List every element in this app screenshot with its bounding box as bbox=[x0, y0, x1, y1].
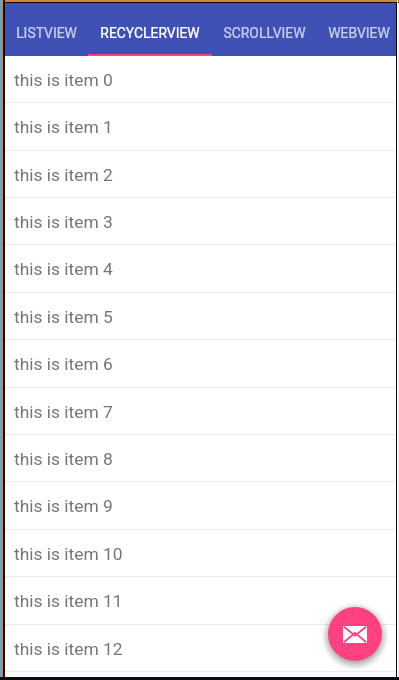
staticText: this is item 2 bbox=[14, 165, 113, 185]
staticText: this is item 6 bbox=[14, 354, 113, 374]
button[interactable]: this is item 10 bbox=[5, 530, 396, 577]
staticText: this is item 7 bbox=[14, 402, 113, 422]
button[interactable]: this is item 7 bbox=[5, 388, 396, 435]
staticText: this is item 5 bbox=[14, 307, 113, 327]
button[interactable]: this is item 1 bbox=[5, 103, 396, 150]
staticText: this is item 3 bbox=[14, 212, 113, 232]
button[interactable]: this is item 6 bbox=[5, 340, 396, 387]
staticText: RECYCLERVIEW bbox=[100, 25, 200, 41]
button[interactable]: this is item 12 bbox=[5, 625, 396, 672]
staticText: this is item 11 bbox=[14, 591, 123, 611]
button[interactable]: RECYCLERVIEW bbox=[89, 3, 210, 56]
staticText: this is item 12 bbox=[14, 639, 123, 659]
button[interactable]: SCROLLVIEW bbox=[210, 3, 318, 56]
button[interactable]: this is item 8 bbox=[5, 435, 396, 482]
staticText: this is item 8 bbox=[14, 449, 113, 469]
staticText: this is item 10 bbox=[14, 544, 123, 564]
button[interactable]: this is item 4 bbox=[5, 245, 396, 292]
button[interactable]: this is item 2 bbox=[5, 151, 396, 198]
staticText: LISTVIEW bbox=[16, 25, 77, 41]
staticText: this is item 1 bbox=[14, 117, 113, 137]
button[interactable]: this is item 0 bbox=[5, 56, 396, 103]
staticText: this is item 4 bbox=[14, 259, 113, 279]
button[interactable]: this is item 5 bbox=[5, 293, 396, 340]
staticText: this is item 9 bbox=[14, 496, 113, 516]
staticText: WEBVIEW bbox=[328, 25, 390, 41]
button[interactable]: WEBVIEW bbox=[317, 3, 399, 56]
button[interactable]: this is item 9 bbox=[5, 482, 396, 529]
button[interactable]: Compose email bbox=[328, 607, 382, 661]
staticText: this is item 0 bbox=[14, 70, 113, 90]
button[interactable]: this is item 3 bbox=[5, 198, 396, 245]
button[interactable]: this is item 11 bbox=[5, 577, 396, 624]
staticText: SCROLLVIEW bbox=[223, 25, 306, 41]
button[interactable]: LISTVIEW bbox=[4, 3, 89, 56]
